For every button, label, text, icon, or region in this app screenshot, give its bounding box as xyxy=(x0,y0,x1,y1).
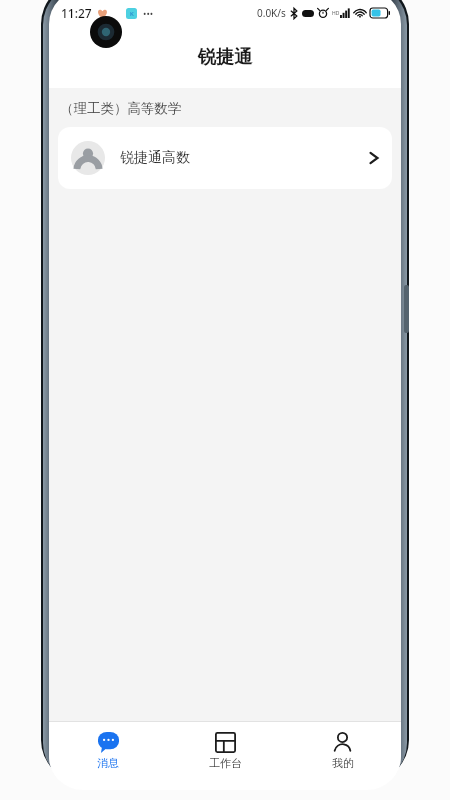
staticText: 0.0K/s xyxy=(257,6,286,20)
other: Profile xyxy=(332,732,353,753)
other: Messages xyxy=(98,732,119,753)
staticText: 锐捷通高数 xyxy=(120,149,190,167)
staticText: 锐捷通 xyxy=(198,46,252,69)
staticText: ••• xyxy=(143,7,154,19)
staticText: 11:27 xyxy=(61,5,92,21)
staticText: 消息 xyxy=(97,756,119,770)
button[interactable]: Profile xyxy=(284,722,401,780)
staticText: K xyxy=(130,10,134,18)
staticText: HD xyxy=(332,10,340,17)
staticText: （理工类）高等数学 xyxy=(60,100,182,117)
button[interactable]: Messages xyxy=(49,722,167,780)
other: Workbench xyxy=(215,732,236,753)
button[interactable]: 锐捷通高数 xyxy=(58,127,392,189)
staticText: 工作台 xyxy=(209,756,242,770)
staticText: 我的 xyxy=(332,756,354,770)
button[interactable]: Workbench xyxy=(167,722,284,780)
